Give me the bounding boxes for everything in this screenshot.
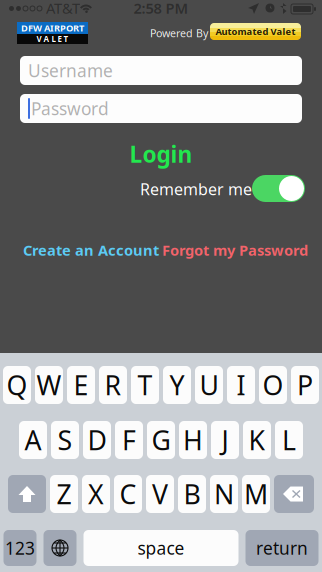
button[interactable]: R: [99, 366, 127, 404]
button[interactable]: V: [146, 475, 174, 513]
button[interactable]: Y: [163, 366, 191, 404]
staticText: DFW AIRPORT: [21, 22, 84, 34]
staticText: F: [122, 422, 136, 458]
staticText: Z: [56, 476, 71, 512]
button[interactable]: Forgot my Password: [162, 241, 310, 259]
staticText: P: [297, 367, 313, 403]
button[interactable]: C: [114, 475, 142, 513]
staticText: E: [73, 367, 88, 403]
staticText: 123: [5, 536, 35, 559]
staticText: Forgot my Password: [162, 240, 308, 260]
button[interactable]: A: [19, 421, 47, 459]
staticText: Create an Account: [23, 240, 159, 260]
staticText: U: [199, 367, 218, 403]
button[interactable]: K: [243, 421, 271, 459]
button[interactable]: E: [67, 366, 95, 404]
staticText: S: [57, 422, 72, 458]
button[interactable]: Login: [0, 140, 322, 168]
button[interactable]: return: [245, 530, 318, 566]
staticText: 2:58 PM: [133, 0, 188, 18]
staticText: V: [152, 476, 168, 512]
staticText: R: [104, 367, 121, 403]
button[interactable]: L: [275, 421, 303, 459]
staticText: O: [262, 367, 283, 403]
staticText: I: [236, 367, 245, 403]
button[interactable]: 123: [3, 530, 36, 566]
staticText: return: [256, 536, 308, 559]
staticText: V A L E T: [36, 34, 68, 44]
button[interactable]: N: [210, 475, 238, 513]
button[interactable]: X: [82, 475, 110, 513]
staticText: Automated Valet: [215, 25, 295, 38]
staticText: Q: [6, 367, 27, 403]
button[interactable]: H: [179, 421, 207, 459]
staticText: J: [221, 422, 228, 458]
button[interactable]: Q: [3, 366, 31, 404]
button[interactable]: Next keyboard: [43, 530, 76, 566]
button[interactable]: P: [291, 366, 319, 404]
staticText: X: [88, 476, 104, 512]
button[interactable]: I: [227, 366, 255, 404]
staticText: A: [24, 422, 41, 458]
staticText: H: [183, 422, 203, 458]
button[interactable]: space: [83, 530, 238, 566]
staticText: K: [248, 422, 265, 458]
staticText: D: [87, 422, 106, 458]
button[interactable]: M: [242, 475, 270, 513]
staticText: W: [36, 367, 61, 403]
staticText: N: [214, 476, 234, 512]
staticText: Remember me: [140, 178, 252, 200]
button[interactable]: Shift: [8, 475, 46, 513]
staticText: space: [137, 536, 184, 559]
button[interactable]: G: [147, 421, 175, 459]
button[interactable]: Delete: [274, 475, 314, 513]
staticText: G: [151, 422, 170, 458]
staticText: C: [119, 476, 136, 512]
staticText: Password: [31, 97, 109, 120]
button[interactable]: W: [35, 366, 63, 404]
staticText: AT&T: [46, 0, 80, 18]
button[interactable]: Remember me: [252, 175, 305, 202]
button[interactable]: D: [83, 421, 111, 459]
staticText: Username: [28, 59, 113, 82]
staticText: Powered By: [150, 26, 208, 40]
button[interactable]: B: [178, 475, 206, 513]
staticText: Login: [129, 139, 192, 169]
staticText: Y: [169, 367, 184, 403]
button[interactable]: O: [259, 366, 287, 404]
staticText: M: [244, 476, 268, 512]
button[interactable]: S: [51, 421, 79, 459]
button[interactable]: Z: [50, 475, 78, 513]
staticText: B: [183, 476, 200, 512]
button[interactable]: U: [195, 366, 223, 404]
staticText: L: [282, 422, 296, 458]
staticText: T: [137, 367, 152, 403]
button[interactable]: T: [131, 366, 159, 404]
button[interactable]: F: [115, 421, 143, 459]
button[interactable]: Create an Account: [23, 241, 154, 259]
button[interactable]: J: [211, 421, 239, 459]
